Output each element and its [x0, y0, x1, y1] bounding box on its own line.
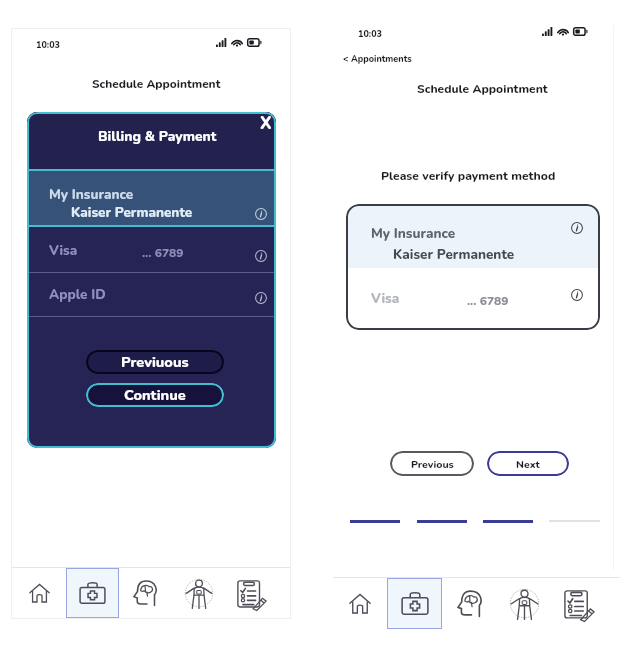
button[interactable]: Previuous: [86, 350, 224, 374]
button[interactable]: Body: [497, 578, 552, 629]
staticText: Next: [516, 457, 540, 471]
staticText: 10:03: [36, 39, 60, 51]
staticText: Visa: [49, 241, 78, 259]
button[interactable]: Close: [253, 112, 276, 136]
button[interactable]: < Appointments: [343, 53, 412, 65]
button[interactable]: Care: [387, 578, 442, 629]
staticText: X: [260, 112, 272, 135]
staticText: Schedule Appointment: [92, 76, 221, 92]
staticText: Schedule Appointment: [417, 81, 548, 97]
staticText: Visa: [371, 289, 400, 307]
staticText: Continue: [124, 385, 186, 405]
button[interactable]: Forms: [225, 568, 278, 618]
staticText: ... 6789: [142, 245, 184, 261]
staticText: My Insurance: [49, 185, 134, 203]
button[interactable]: Previous: [390, 451, 474, 476]
button[interactable]: Billing & Payment: [95, 123, 219, 149]
button[interactable]: Continue: [86, 383, 224, 407]
staticText: Billing & Payment: [98, 127, 217, 146]
staticText: Kaiser Permanente: [393, 245, 515, 263]
button[interactable]: Home: [13, 568, 66, 618]
button[interactable]: Body: [172, 568, 225, 618]
staticText: ... 6789: [467, 293, 509, 309]
button[interactable]: Home: [332, 578, 387, 629]
button[interactable]: Mental health: [119, 568, 172, 618]
button[interactable]: Next: [487, 451, 569, 476]
staticText: Apple ID: [49, 285, 106, 303]
staticText: My Insurance: [371, 224, 456, 242]
staticText: 10:03: [358, 28, 382, 40]
button[interactable]: Forms: [552, 578, 607, 629]
staticText: Please verify payment method: [381, 168, 556, 185]
button[interactable]: Care: [66, 568, 119, 618]
staticText: Previuous: [121, 352, 189, 372]
staticText: Previous: [411, 457, 454, 471]
button[interactable]: Mental health: [442, 578, 497, 629]
staticText: Kaiser Permanente: [71, 203, 193, 221]
